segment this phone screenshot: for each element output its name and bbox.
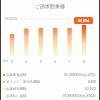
button[interactable]: ¥5,864: [74, 17, 93, 24]
staticText: お支払い金額: [6, 94, 27, 98]
staticText: お客様負担額: [6, 73, 27, 77]
staticText: ¥5,493(前月比+37%): [64, 72, 96, 77]
staticText: ¥5,864: [78, 18, 90, 23]
staticText: 7: [68, 59, 71, 64]
staticText: 4: [25, 59, 28, 64]
staticText: 5: [40, 59, 43, 64]
staticText: 3: [11, 59, 14, 64]
staticText: ¥20,000: [5, 17, 17, 21]
staticText: 8: [83, 59, 86, 64]
staticText: ¥2,520: [85, 86, 96, 91]
staticText: (月): [3, 59, 8, 63]
staticText: ¥5,864(前月比+¥564): [63, 93, 96, 98]
staticText: お客様利用額: [6, 87, 27, 91]
button[interactable]: お客様利用額: [3, 85, 96, 92]
button[interactable]: ポイント・割引利用額: [3, 78, 96, 85]
button[interactable]: ご請求額推移: [0, 0, 100, 11]
button[interactable]: お支払い金額: [3, 92, 96, 99]
staticText: ご請求額推移: [35, 3, 66, 9]
staticText: 6: [54, 59, 57, 64]
staticText: ポイント・割引利用額: [6, 80, 41, 84]
staticText: ¥409: [88, 79, 96, 84]
button[interactable]: お客様負担額: [3, 71, 96, 78]
